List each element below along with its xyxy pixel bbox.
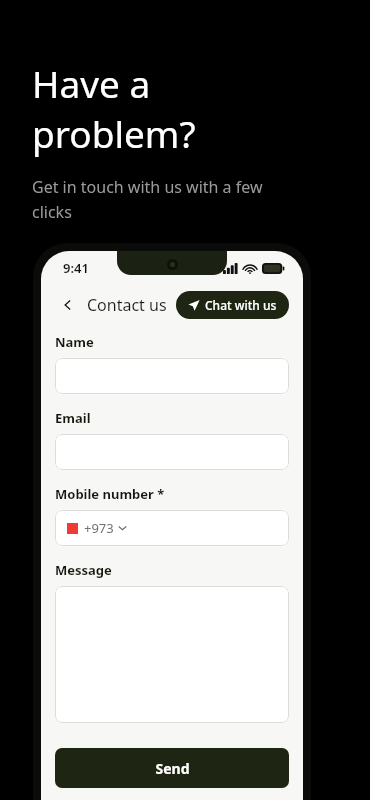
button[interactable] bbox=[55, 586, 289, 723]
staticText: Have a bbox=[32, 58, 151, 108]
staticText: Name bbox=[55, 333, 94, 351]
button[interactable] bbox=[55, 358, 289, 394]
staticText: problem? bbox=[32, 108, 196, 158]
staticText: Chat with us bbox=[205, 297, 277, 313]
staticText: Message bbox=[55, 561, 112, 579]
button[interactable]: Send bbox=[55, 748, 289, 788]
staticText: Mobile number * bbox=[55, 485, 165, 503]
button[interactable]: Back bbox=[55, 292, 81, 318]
staticText: Send bbox=[155, 759, 190, 778]
button[interactable] bbox=[55, 434, 289, 470]
staticText: 9:41 bbox=[63, 259, 89, 277]
staticText: +973 bbox=[84, 519, 114, 537]
staticText: Email bbox=[55, 409, 91, 427]
staticText: Contact us bbox=[87, 294, 167, 316]
button[interactable]: +973 bbox=[55, 510, 289, 546]
button[interactable]: Chat with us bbox=[176, 291, 289, 319]
staticText: Get in touch with us with a few clicks bbox=[32, 176, 263, 222]
